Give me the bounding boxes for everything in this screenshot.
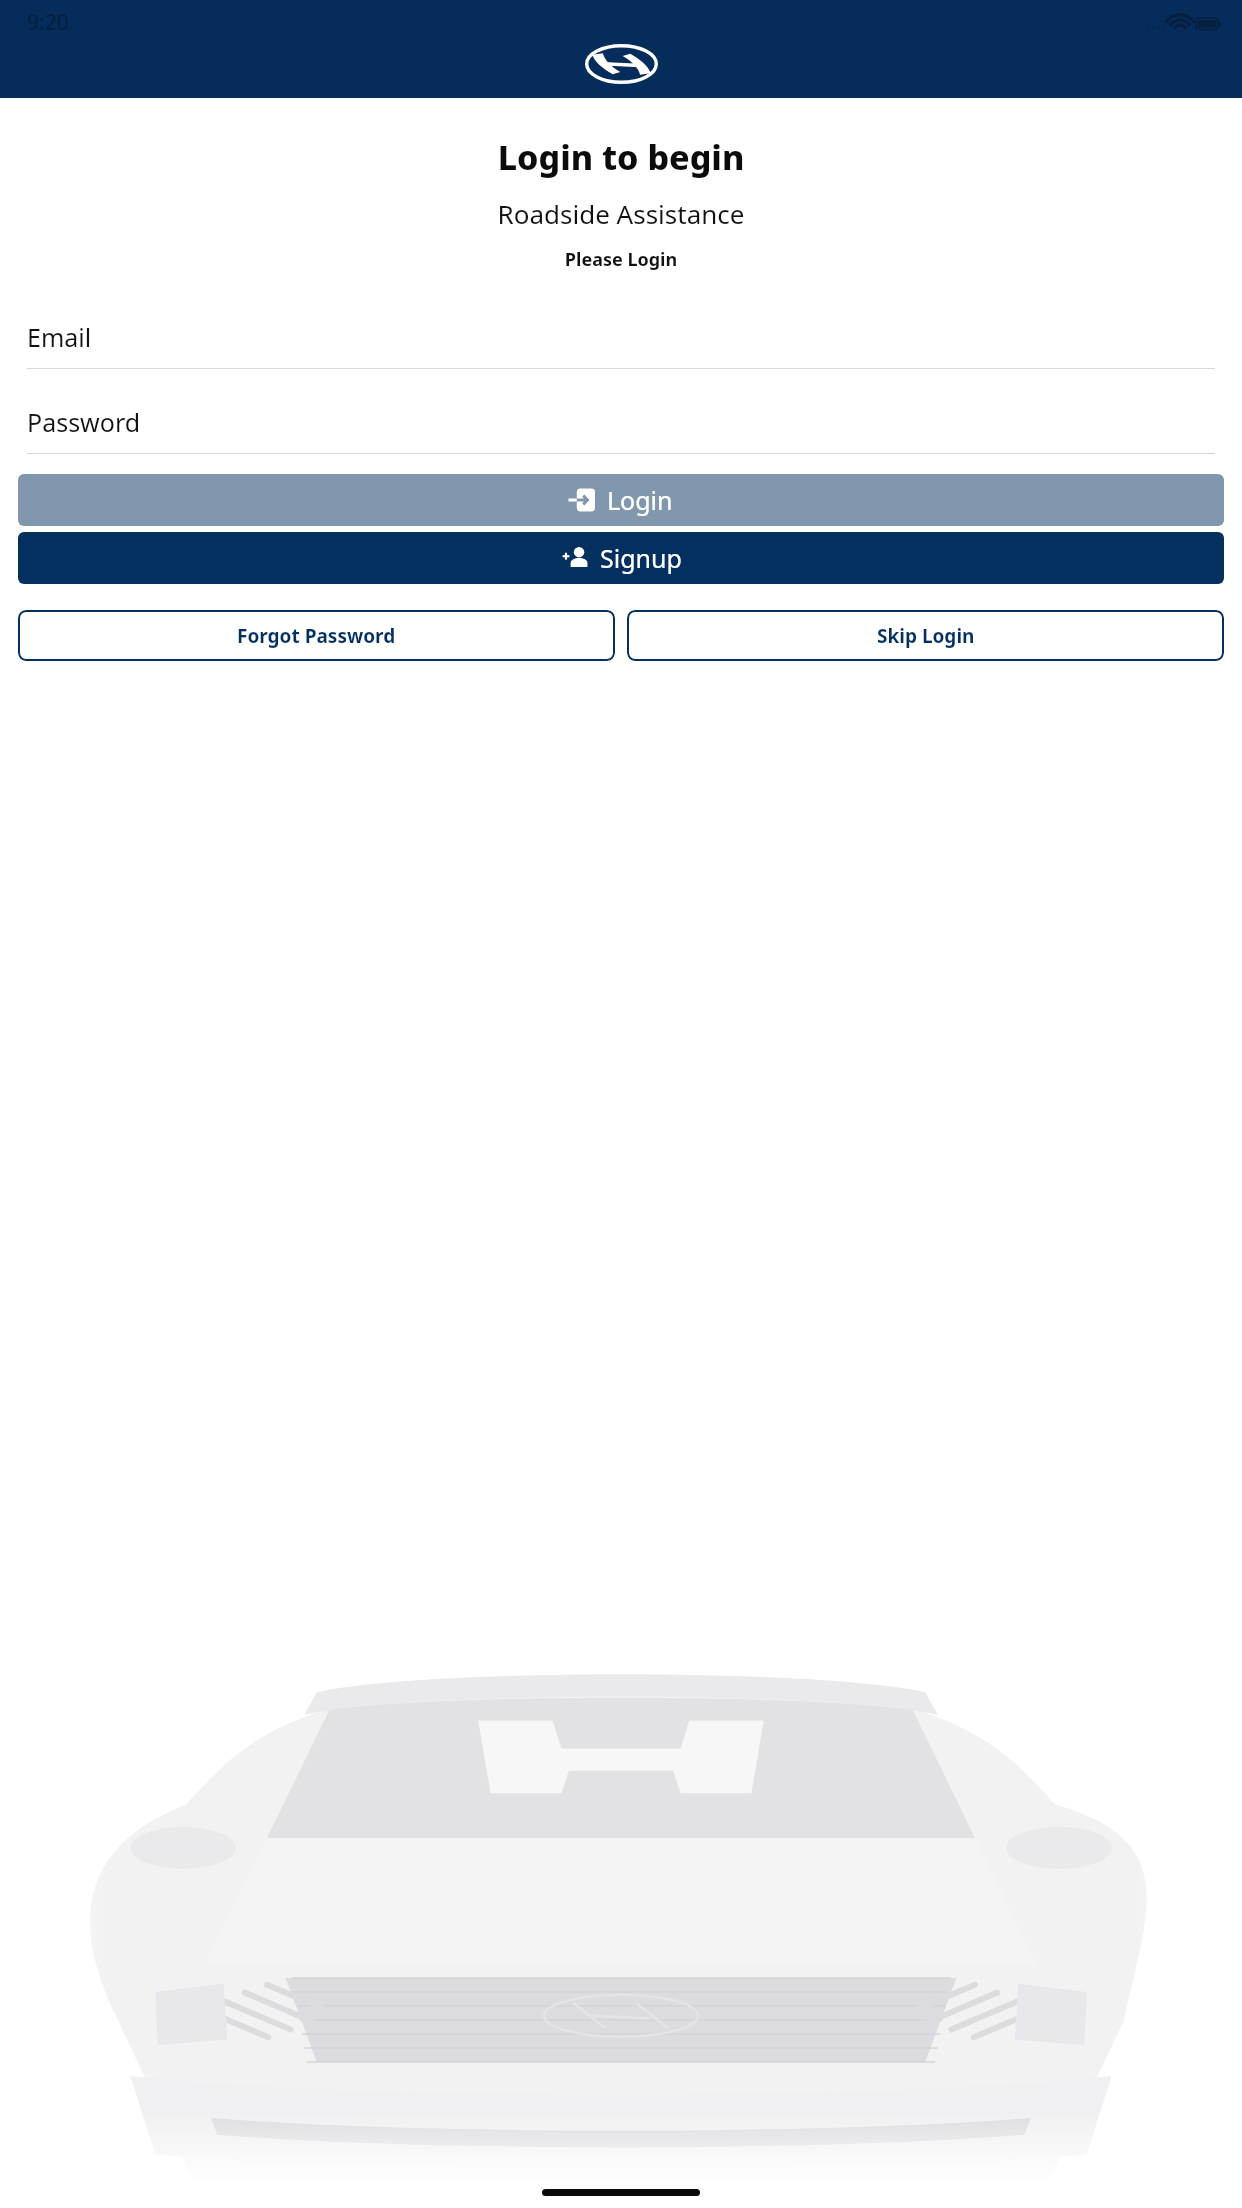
button[interactable]: Signup [18,532,1224,584]
button[interactable]: Email [27,320,1215,369]
staticText: Please Login [0,247,1242,272]
staticText: Login [607,483,673,517]
button[interactable]: Skip Login [627,610,1224,661]
staticText: Signup [600,541,682,575]
staticText: Roadside Assistance [0,196,1242,231]
staticText: Login to begin [0,134,1242,180]
button[interactable]: Login [18,474,1224,526]
staticText: 9:20 [27,8,69,37]
button[interactable]: Forgot Password [18,610,615,661]
staticText: Email [27,320,92,354]
staticText: Password [27,405,141,439]
staticText: Skip Login [877,623,975,649]
button[interactable]: Password [27,405,1215,454]
staticText: Forgot Password [237,623,396,649]
